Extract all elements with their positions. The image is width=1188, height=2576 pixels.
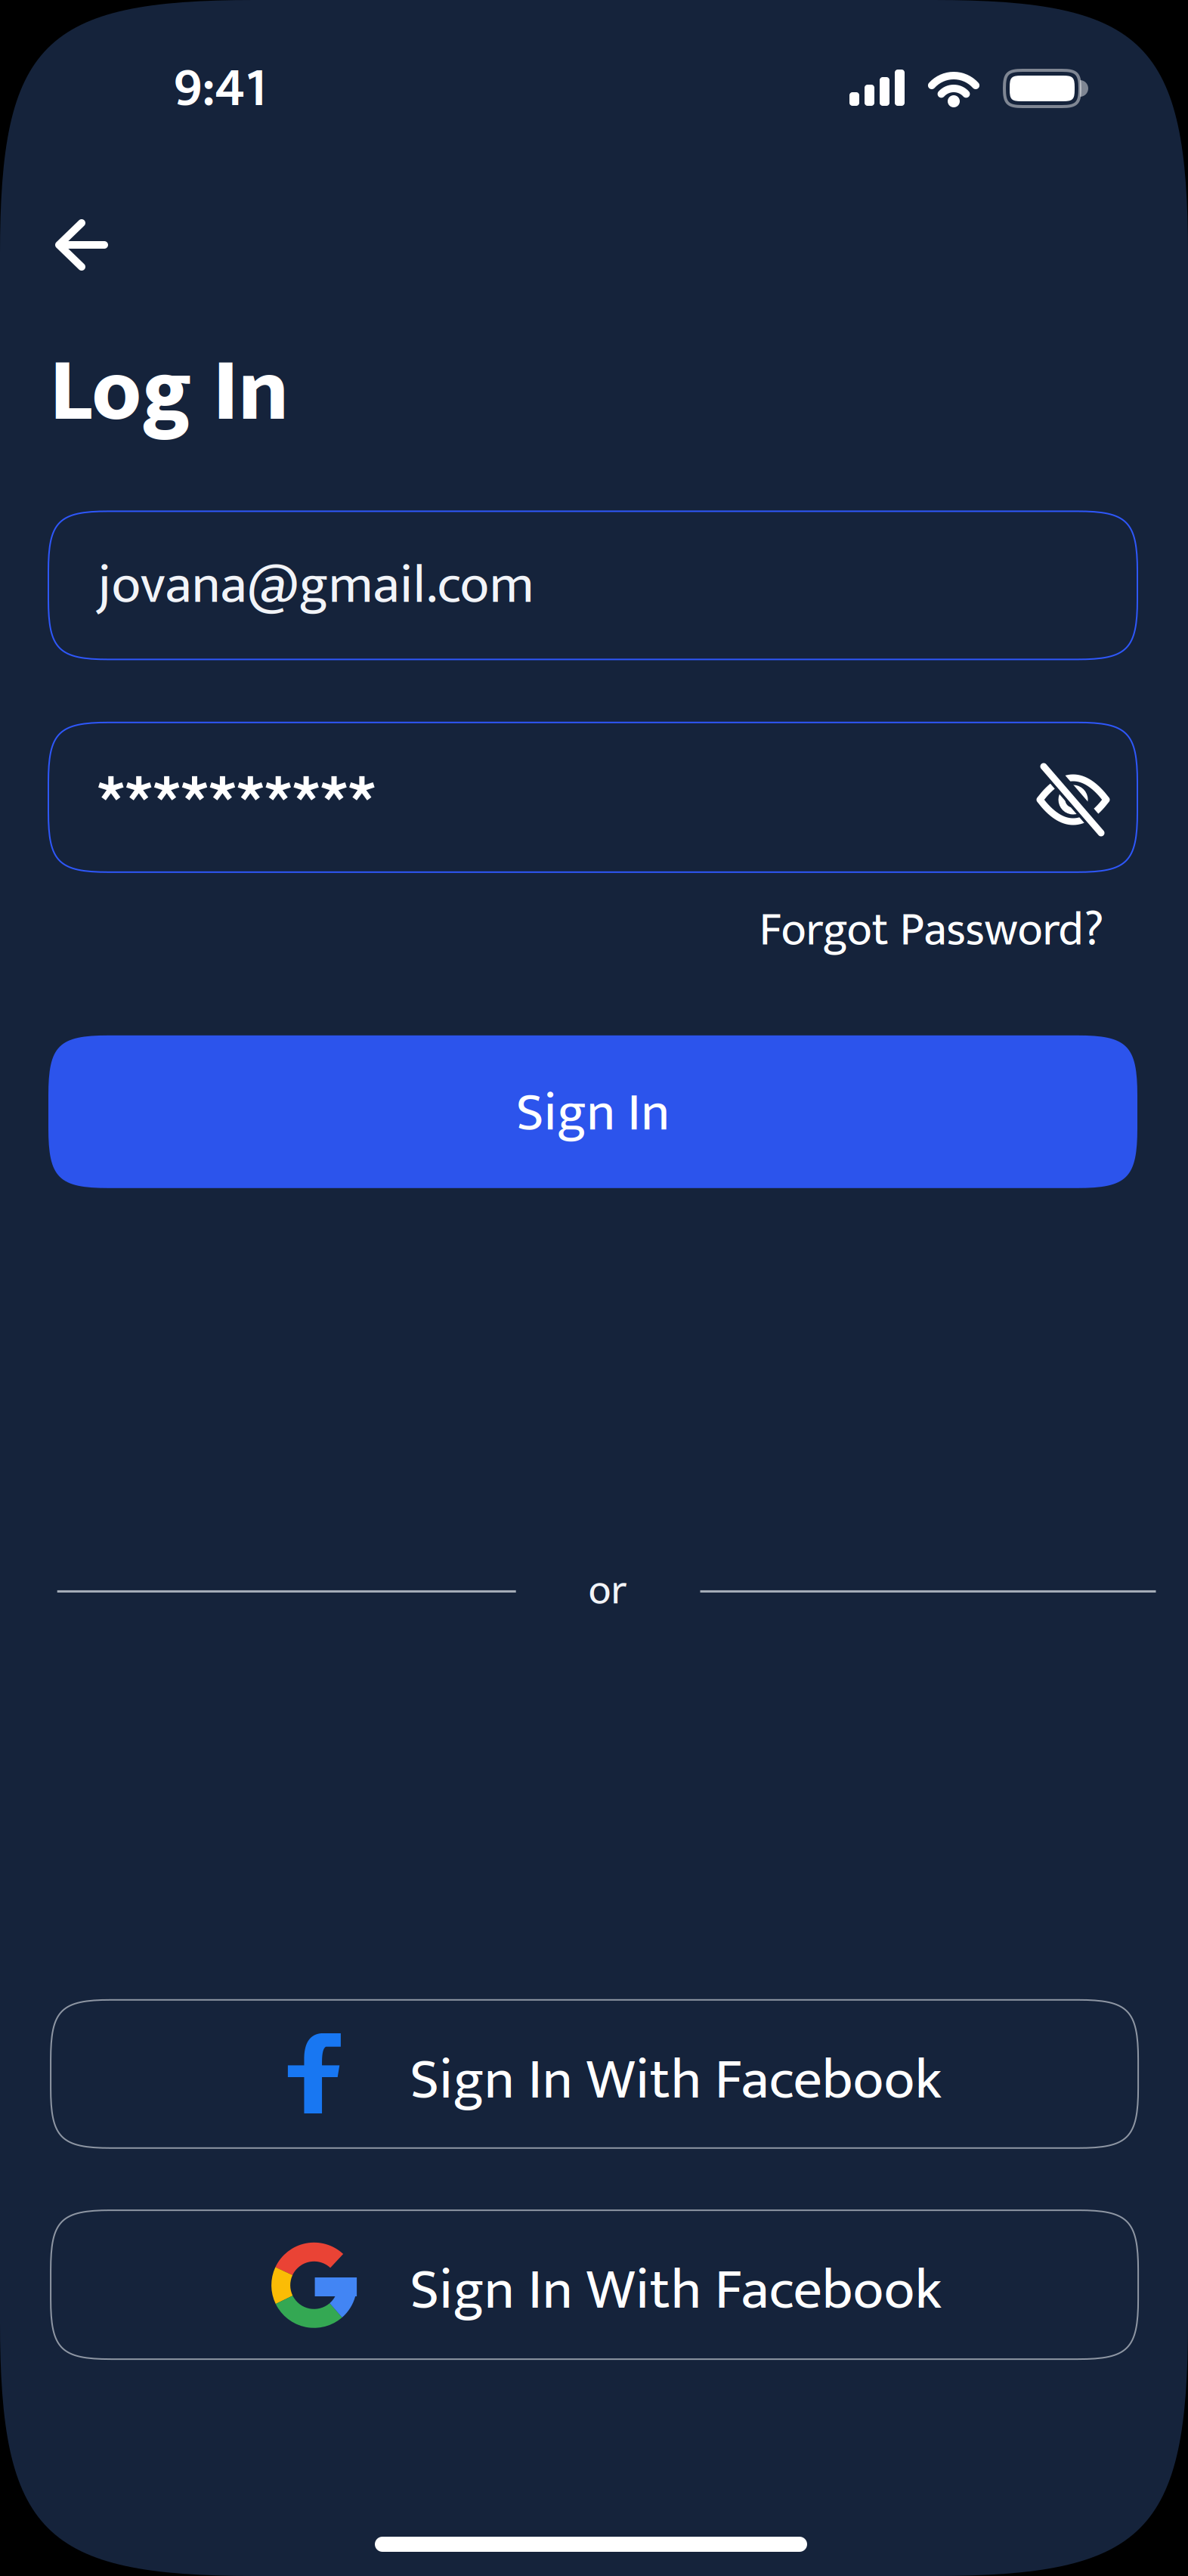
button[interactable]: Sign In With Facebook	[51, 2000, 1138, 2148]
staticText: 9:41	[174, 44, 266, 134]
button[interactable]: Show password	[1007, 733, 1140, 866]
button[interactable]: Sign In With Facebook	[51, 2210, 1138, 2359]
staticText: jovana@gmail.com	[98, 540, 534, 631]
button[interactable]: Back	[15, 178, 148, 311]
staticText: Forgot Password?	[759, 892, 1104, 969]
staticText: Sign In	[516, 1068, 670, 1159]
staticText: Sign In With Facebook	[410, 2243, 941, 2338]
button[interactable]: Sign In	[48, 1035, 1137, 1188]
staticText: Log In	[50, 319, 289, 466]
staticText: or	[588, 1556, 627, 1626]
button[interactable]: Forgot Password?	[759, 892, 1104, 969]
staticText: Sign In With Facebook	[410, 2033, 941, 2128]
